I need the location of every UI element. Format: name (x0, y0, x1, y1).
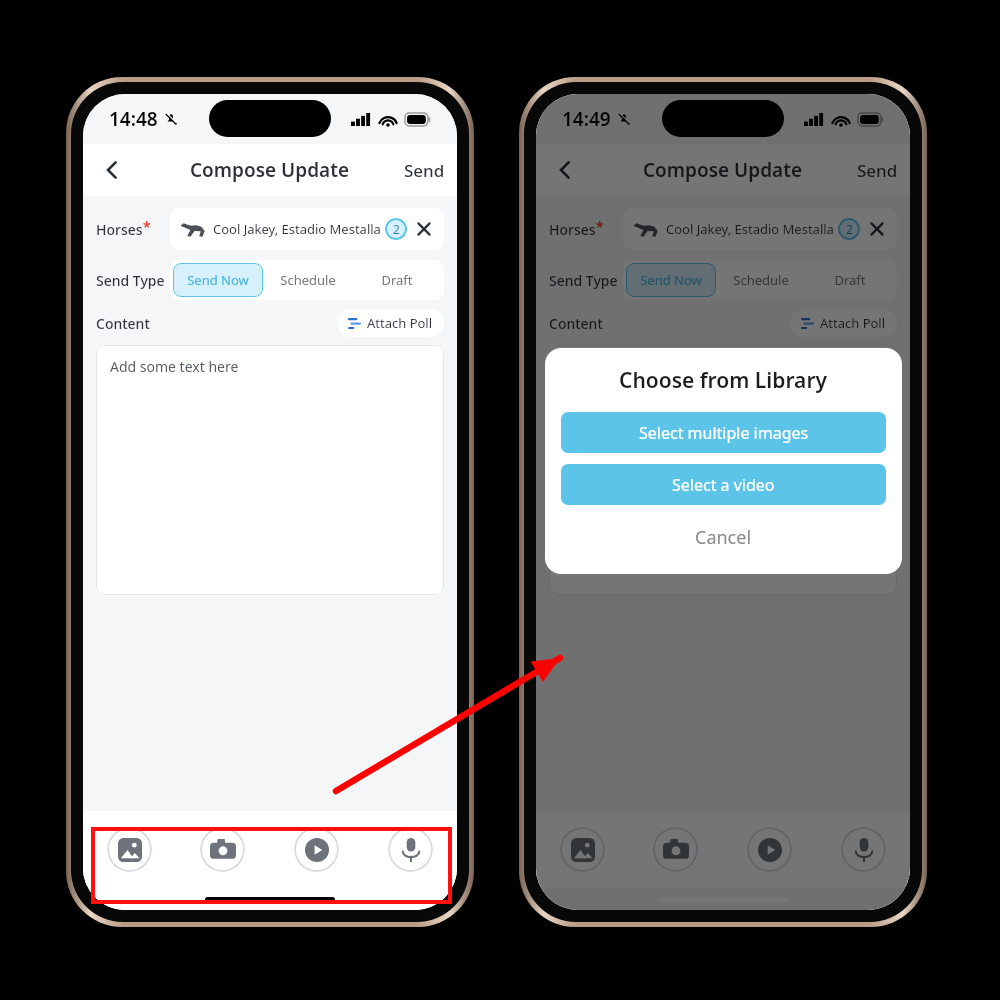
button[interactable]: Send (392, 149, 457, 192)
staticText: Attach Poll (367, 314, 433, 332)
button[interactable]: Add some text here (96, 345, 444, 595)
staticText: Send Now (187, 271, 249, 289)
staticText: Draft (381, 271, 413, 289)
staticText: Compose Update (643, 157, 803, 183)
button[interactable]: Send (845, 149, 910, 192)
staticText: Add some text here (563, 357, 692, 376)
button[interactable]: Add some text here (549, 345, 897, 595)
staticText: Content (96, 314, 150, 333)
staticText: Compose Update (190, 157, 350, 183)
staticText: Schedule (280, 271, 336, 289)
button[interactable]: Cool Jakey, Estadio Mestalla (170, 208, 444, 250)
button[interactable]: Video (722, 811, 816, 888)
button[interactable]: Schedule (263, 263, 352, 297)
staticText: Send Type (96, 271, 165, 290)
staticText: Send (404, 159, 445, 182)
staticText: 2 (393, 221, 400, 237)
staticText: Draft (834, 271, 866, 289)
staticText: Send Now (640, 271, 702, 289)
button[interactable]: Clear (414, 219, 434, 239)
button[interactable]: Photo library (83, 811, 176, 888)
staticText: Horses (549, 220, 596, 239)
staticText: 14:48 (109, 106, 158, 132)
staticText: 2 (846, 221, 853, 237)
button[interactable]: Attach Poll (790, 309, 897, 337)
staticText: Cancel (695, 525, 752, 550)
button[interactable]: Voice (363, 811, 457, 888)
staticText: Choose from Library (619, 366, 828, 395)
staticText: Schedule (733, 271, 789, 289)
staticText: * (143, 217, 151, 236)
button[interactable]: Schedule (716, 263, 805, 297)
staticText: * (596, 217, 604, 236)
button[interactable]: Select a video (561, 464, 886, 505)
button[interactable]: Cancel (561, 519, 886, 556)
button[interactable]: Attach Poll (337, 309, 444, 337)
button[interactable]: Back (544, 149, 586, 191)
staticText: Horses (96, 220, 143, 239)
button[interactable]: Send Now (173, 263, 263, 297)
button[interactable]: Video (269, 811, 363, 888)
staticText: Send Type (549, 271, 618, 290)
staticText: Content (549, 314, 603, 333)
staticText: Cool Jakey, Estadio Mestalla (213, 220, 381, 238)
button[interactable]: Photo library (536, 811, 629, 888)
staticText: Attach Poll (820, 314, 886, 332)
staticText: Send (857, 159, 898, 182)
button[interactable]: Send Now (626, 263, 716, 297)
button[interactable]: Cool Jakey, Estadio Mestalla (623, 208, 897, 250)
button[interactable]: Draft (352, 263, 441, 297)
button[interactable]: Voice (816, 811, 910, 888)
button[interactable]: Camera (629, 811, 722, 888)
button[interactable]: Camera (176, 811, 269, 888)
staticText: Cool Jakey, Estadio Mestalla (666, 220, 834, 238)
staticText: 14:49 (562, 106, 611, 132)
button[interactable]: Select multiple images (561, 412, 886, 453)
staticText: Select a video (672, 474, 775, 496)
button[interactable]: Back (91, 149, 133, 191)
button[interactable]: Clear (867, 219, 887, 239)
staticText: Add some text here (110, 357, 239, 376)
staticText: Select multiple images (639, 422, 809, 444)
button[interactable]: Draft (805, 263, 894, 297)
